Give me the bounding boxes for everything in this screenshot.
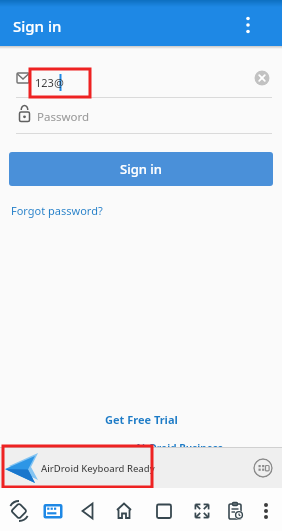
button[interactable]: Sign in <box>9 152 273 186</box>
staticText: Get Free Trial <box>105 412 178 427</box>
button[interactable] <box>252 497 280 525</box>
button[interactable]: AirDroid Keyboard Ready <box>0 447 282 488</box>
staticText: AirDroid Keyboard Ready <box>41 462 155 475</box>
button[interactable] <box>254 70 270 86</box>
button[interactable] <box>5 497 33 525</box>
staticText: Password <box>37 109 90 125</box>
staticText: Sign in <box>120 160 162 178</box>
button[interactable] <box>74 497 102 525</box>
button[interactable] <box>253 458 273 478</box>
button[interactable]: 123@ <box>0 62 282 98</box>
staticText: 123@ <box>35 75 64 90</box>
button[interactable] <box>238 15 258 35</box>
button[interactable] <box>39 497 67 525</box>
staticText: Forgot password? <box>11 203 103 218</box>
button[interactable]: Password <box>0 100 282 134</box>
staticText: AirDroid Business <box>135 441 223 455</box>
button[interactable] <box>221 497 249 525</box>
button[interactable]: Forgot password? <box>11 203 103 218</box>
button[interactable] <box>110 497 138 525</box>
button[interactable] <box>150 497 178 525</box>
button[interactable]: Get Free Trial <box>105 412 178 427</box>
staticText: Sign in <box>13 16 62 36</box>
button[interactable] <box>188 497 216 525</box>
